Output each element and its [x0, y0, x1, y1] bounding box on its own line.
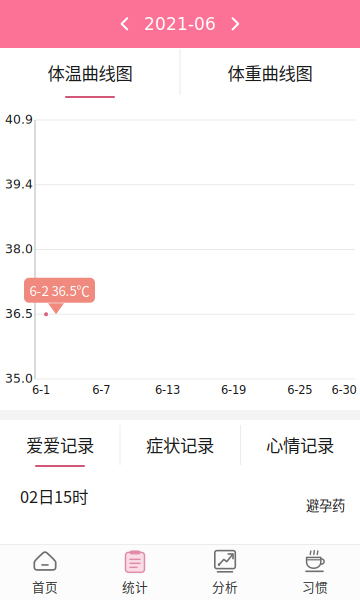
staticText: 分析 [212, 577, 238, 596]
staticText: 心情记录 [266, 432, 334, 457]
staticText: 统计 [122, 577, 148, 596]
button[interactable]: 爱爱记录 [0, 420, 120, 470]
staticText: 36.5 [5, 306, 33, 321]
staticText: 02日15时 [20, 484, 88, 508]
staticText: 6-2 36.5℃ [29, 281, 89, 300]
button[interactable]: 体温曲线图 [0, 48, 180, 96]
staticText: 习惯 [302, 577, 328, 596]
staticText: 38.0 [5, 242, 33, 256]
staticText: 首页 [32, 577, 58, 596]
button[interactable]: 体重曲线图 [180, 48, 360, 96]
staticText: 40.9 [5, 112, 33, 127]
staticText: 6-30 [331, 383, 356, 397]
staticText: 6-13 [155, 383, 180, 397]
staticText: 避孕药 [306, 495, 345, 514]
staticText: 6-19 [221, 383, 246, 397]
staticText: 35.0 [5, 371, 33, 386]
button[interactable]: Previous month [110, 9, 133, 39]
button[interactable]: 心情记录 [240, 420, 360, 470]
button[interactable]: Next month [227, 9, 250, 39]
button[interactable]: 统计 [90, 545, 180, 600]
staticText: 6-1 [32, 383, 50, 397]
button[interactable]: 首页 [0, 545, 90, 600]
staticText: 症状记录 [146, 432, 214, 457]
staticText: 6-25 [287, 383, 312, 397]
staticText: 6-7 [92, 383, 110, 397]
staticText: 39.4 [5, 177, 33, 191]
staticText: 体温曲线图 [47, 60, 132, 85]
staticText: 2021-06 [144, 14, 216, 34]
staticText: 爱爱记录 [26, 432, 94, 457]
button[interactable]: 症状记录 [120, 420, 240, 470]
button[interactable]: 02日15时 [0, 470, 360, 545]
staticText: 体重曲线图 [227, 60, 312, 85]
button[interactable]: 分析 [180, 545, 270, 600]
button[interactable]: 习惯 [270, 545, 360, 600]
